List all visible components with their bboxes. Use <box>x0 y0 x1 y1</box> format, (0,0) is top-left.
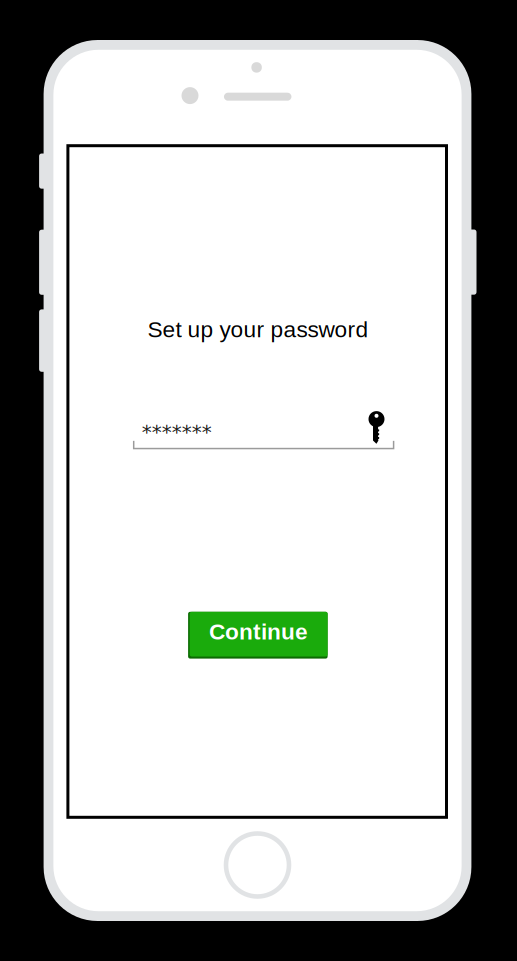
button[interactable]: Continue <box>188 612 328 659</box>
staticText: Continue <box>209 619 308 644</box>
staticText: ******* <box>142 420 212 443</box>
staticText: Set up your password <box>147 317 368 342</box>
